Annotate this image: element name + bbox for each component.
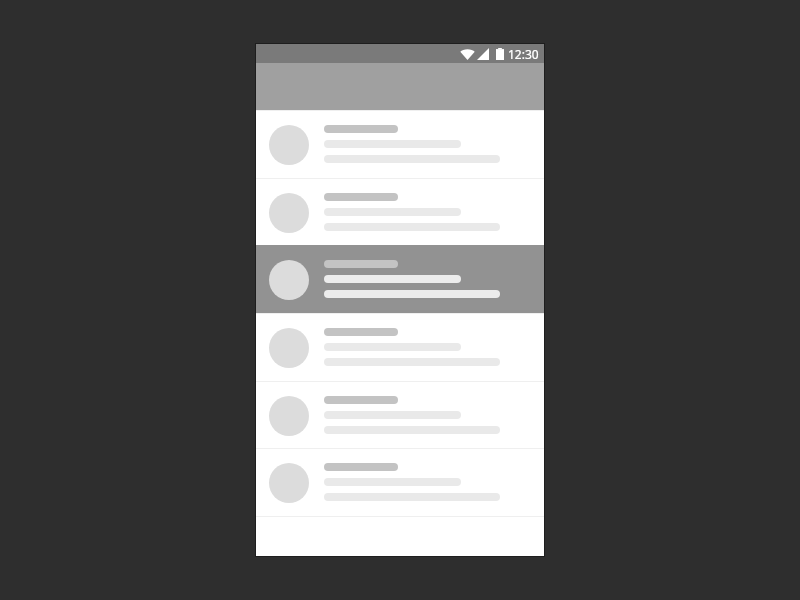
button[interactable]: List item 1 xyxy=(256,110,544,178)
other: Battery full xyxy=(496,48,504,60)
other: Mobile signal xyxy=(477,48,489,60)
staticText: 12:30 xyxy=(508,46,539,62)
other: Wi-Fi signal xyxy=(460,48,475,60)
button[interactable]: List item 3, selected xyxy=(256,245,544,313)
button[interactable]: List item 2 xyxy=(256,178,544,246)
button[interactable]: List item 5 xyxy=(256,381,544,449)
button[interactable]: List item 4 xyxy=(256,313,544,381)
button[interactable]: List item 6 xyxy=(256,448,544,516)
